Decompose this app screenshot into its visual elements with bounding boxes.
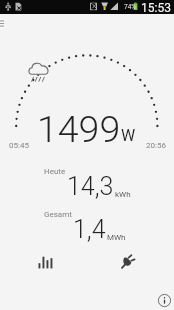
button[interactable]: Statistics (32, 252, 56, 272)
staticText: Gesamt (44, 210, 72, 219)
button[interactable]: Menu (0, 19, 7, 28)
button[interactable]: Info (157, 293, 172, 308)
staticText: 14,3 (67, 172, 114, 201)
staticText: 74% (124, 3, 137, 11)
staticText: MWh (107, 233, 126, 242)
staticText: W (121, 126, 136, 145)
staticText: kWh (115, 190, 131, 199)
staticText: 1,4 (73, 215, 106, 244)
staticText: 15:53 (141, 1, 171, 15)
staticText: 1499 (37, 107, 121, 151)
button[interactable]: Connection (120, 252, 138, 270)
staticText: Heute (44, 167, 66, 176)
staticText: 20:56 (146, 141, 166, 150)
staticText: 05:45 (9, 141, 29, 150)
